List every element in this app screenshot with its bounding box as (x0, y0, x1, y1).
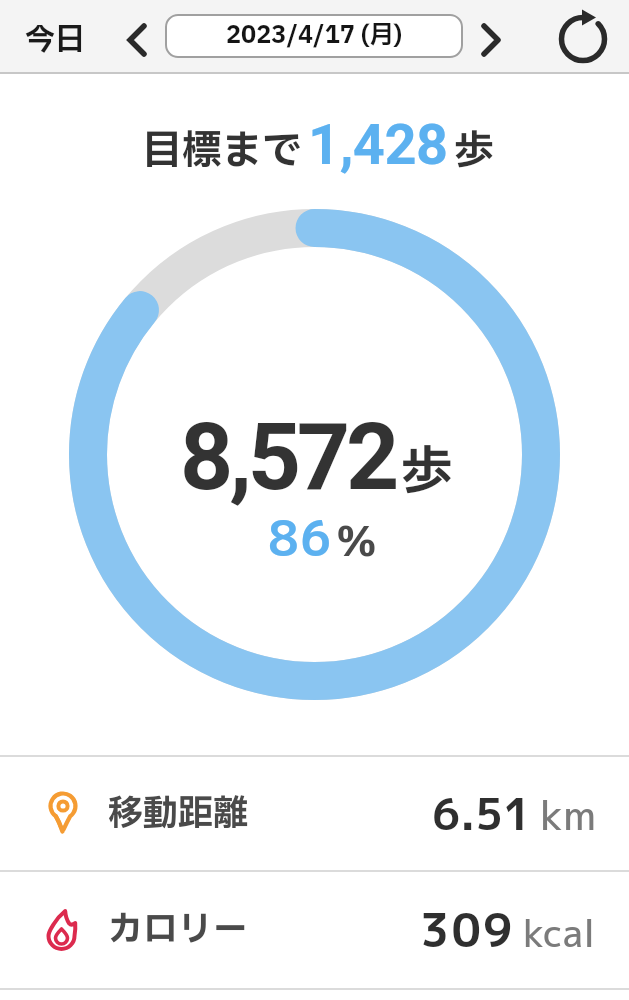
button[interactable]: 移動距離 (0, 757, 629, 870)
staticText: % (336, 514, 377, 574)
staticText: 2023/4/17 (月) (226, 18, 402, 54)
button[interactable] (561, 17, 605, 61)
staticText: kcal (523, 907, 596, 959)
staticText: km (540, 787, 596, 843)
staticText: 6.51 (432, 783, 532, 844)
button[interactable]: 2023/4/17 (月) (165, 14, 463, 58)
staticText: 目標まで (142, 122, 302, 182)
staticText: 309 (420, 898, 515, 962)
staticText: 1,428 (308, 112, 448, 178)
button[interactable]: 今日 (25, 18, 85, 63)
staticText: 8,572 (180, 403, 396, 512)
button[interactable] (127, 24, 147, 56)
button[interactable] (481, 24, 501, 56)
staticText: 移動距離 (108, 788, 249, 840)
staticText: カロリー (108, 904, 249, 956)
button[interactable]: カロリー (0, 872, 629, 988)
staticText: 歩 (401, 434, 454, 512)
staticText: 歩 (454, 122, 494, 182)
staticText: 86 (268, 504, 333, 571)
